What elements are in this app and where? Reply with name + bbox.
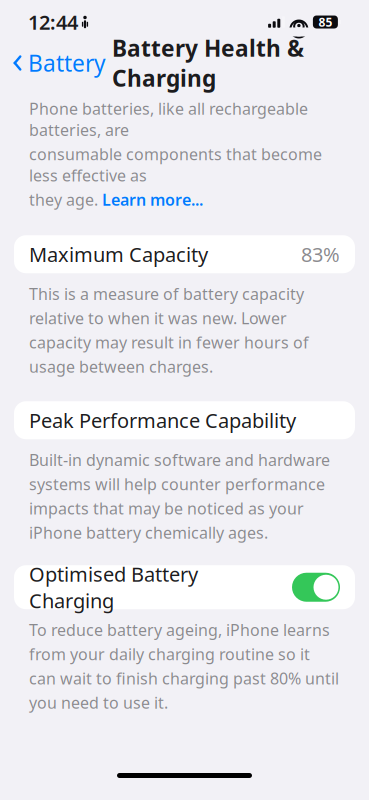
staticText: 85 [318,14,332,30]
staticText: Built-in dynamic software and hardware s… [29,449,330,543]
button[interactable]: Learn more... [102,189,203,210]
staticText: Battery Health & Charging [112,33,304,93]
staticText: Peak Performance Capability [29,407,296,434]
button[interactable]: Optimised Battery Charging [14,565,355,609]
staticText: Optimised Battery Charging [29,561,198,614]
button[interactable]: Peak Performance Capability [14,401,355,439]
staticText: 83% [301,241,340,268]
staticText: they age. [29,189,98,210]
button[interactable]: Battery [12,42,112,84]
staticText: This is a measure of battery capacity re… [29,283,309,377]
staticText: Battery [28,48,106,78]
staticText: 12:44 [28,9,78,35]
staticText: Learn more... [102,189,203,210]
staticText: Maximum Capacity [29,241,208,268]
staticText: To reduce battery ageing, iPhone learns … [29,619,339,713]
staticText: consumable components that become less e… [29,143,322,186]
staticText: Phone batteries, like all rechargeable b… [29,98,308,140]
